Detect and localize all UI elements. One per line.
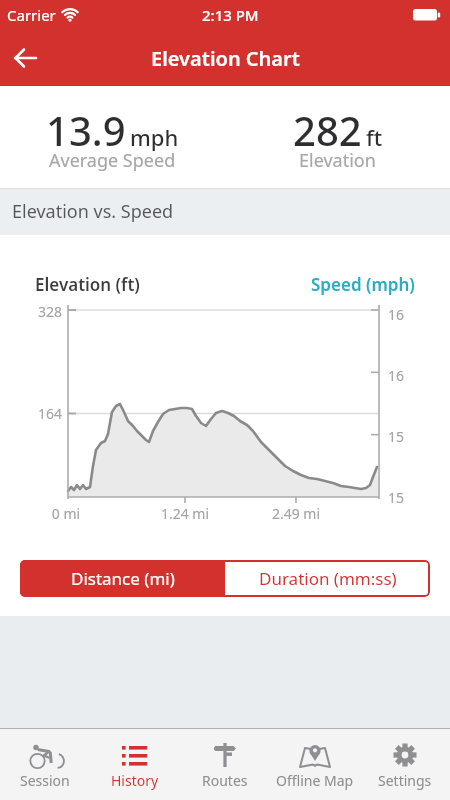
staticText: Offline Map bbox=[276, 771, 354, 790]
staticText: Elevation vs. Speed bbox=[12, 199, 174, 224]
staticText: 2:13 PM bbox=[202, 5, 259, 25]
staticText: ft bbox=[366, 122, 383, 152]
staticText: Distance (mi) bbox=[71, 567, 175, 590]
staticText: Elevation bbox=[299, 148, 376, 173]
staticText: Average Speed bbox=[49, 148, 176, 173]
staticText: Carrier bbox=[7, 5, 56, 25]
staticText: 282 bbox=[293, 103, 362, 157]
staticText: History bbox=[111, 771, 159, 790]
staticText: 2.49 mi bbox=[261, 504, 331, 523]
staticText: Elevation Chart bbox=[151, 45, 300, 72]
button[interactable]: Duration (mm:ss) bbox=[225, 560, 430, 597]
button[interactable]: Offline Map bbox=[270, 729, 360, 800]
staticText: 164 bbox=[28, 404, 62, 423]
staticText: Elevation (ft) bbox=[35, 273, 140, 296]
button[interactable]: Distance (mi) bbox=[20, 560, 225, 597]
staticText: 0 mi bbox=[31, 504, 101, 523]
staticText: Session bbox=[20, 771, 70, 790]
staticText: Settings bbox=[378, 771, 432, 790]
staticText: 13.9 bbox=[46, 103, 126, 157]
button[interactable]: Routes bbox=[180, 729, 270, 800]
staticText: 328 bbox=[28, 302, 62, 321]
staticText: 1.24 mi bbox=[150, 504, 220, 523]
staticText: mph bbox=[130, 122, 179, 152]
staticText: 15 bbox=[388, 488, 418, 507]
button[interactable]: History bbox=[90, 729, 180, 800]
staticText: 16 bbox=[388, 366, 418, 385]
staticText: Routes bbox=[202, 771, 248, 790]
button[interactable]: Settings bbox=[360, 729, 450, 800]
button[interactable] bbox=[14, 46, 38, 70]
staticText: Speed (mph) bbox=[311, 273, 415, 296]
staticText: 15 bbox=[388, 427, 418, 446]
button[interactable]: Session bbox=[0, 729, 90, 800]
staticText: Duration (mm:ss) bbox=[259, 567, 397, 590]
staticText: 16 bbox=[388, 305, 418, 324]
